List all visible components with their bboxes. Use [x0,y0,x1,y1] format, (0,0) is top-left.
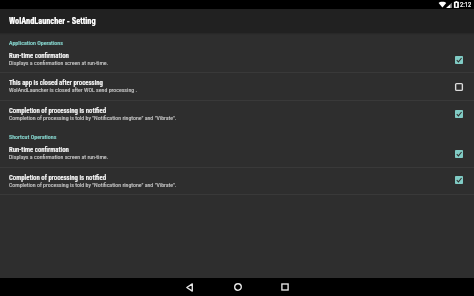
staticText: Run-time confirmation [9,52,69,60]
staticText: This app is closed after processing [9,79,103,87]
button[interactable]: Completion of processing is notified [0,101,474,129]
staticText: Displays a confirmation screen at run-ti… [9,154,109,161]
button[interactable]: Completion of processing is notified [0,168,474,194]
button[interactable]: Recent apps [261,278,308,296]
staticText: Completion of processing is told by "Not… [9,182,177,189]
staticText: Completion of processing is notified [9,174,107,182]
button[interactable]: Back [166,278,213,296]
staticText: Displays a confirmation screen at run-ti… [9,60,109,67]
staticText: Completion of processing is told by "Not… [9,115,177,122]
button[interactable]: This app is closed after processing [0,73,474,100]
staticText: Completion of processing is notified [9,107,107,115]
staticText: WolAndLauncher is closed after WOL send … [9,87,138,94]
staticText: Application Operations [9,39,63,46]
staticText: 2:12 [460,1,472,9]
button[interactable]: Home [214,278,261,296]
staticText: Run-time confirmation [9,146,69,154]
button[interactable]: Run-time confirmation [0,140,474,167]
staticText: WolAndLauncher - Setting [9,16,96,26]
staticText: Shortcut Operations [9,133,57,140]
button[interactable]: Run-time confirmation [0,45,474,72]
